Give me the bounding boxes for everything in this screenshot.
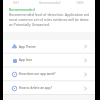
staticText: Recommended	[9, 7, 35, 12]
button[interactable]: App Icon	[3, 53, 95, 67]
staticText: most common set of rules evidence will b…	[9, 17, 89, 22]
staticText: 9:41	[13, 1, 19, 5]
staticText: 100%	[76, 1, 84, 5]
button[interactable]: App Theme	[3, 40, 95, 53]
button[interactable]: How to delete an app?	[3, 81, 95, 95]
staticText: How does our app work?	[19, 72, 56, 76]
staticText: as Potentially Unwanted.	[9, 22, 50, 27]
staticText: App Icon	[19, 58, 33, 62]
button[interactable]: How does our app work?	[3, 67, 95, 81]
staticText: Recommended	[39, 1, 61, 5]
staticText: How to delete an app?	[19, 86, 52, 90]
staticText: Recommended level of detection. Applicat…	[9, 12, 89, 17]
staticText: App Theme	[19, 45, 36, 49]
